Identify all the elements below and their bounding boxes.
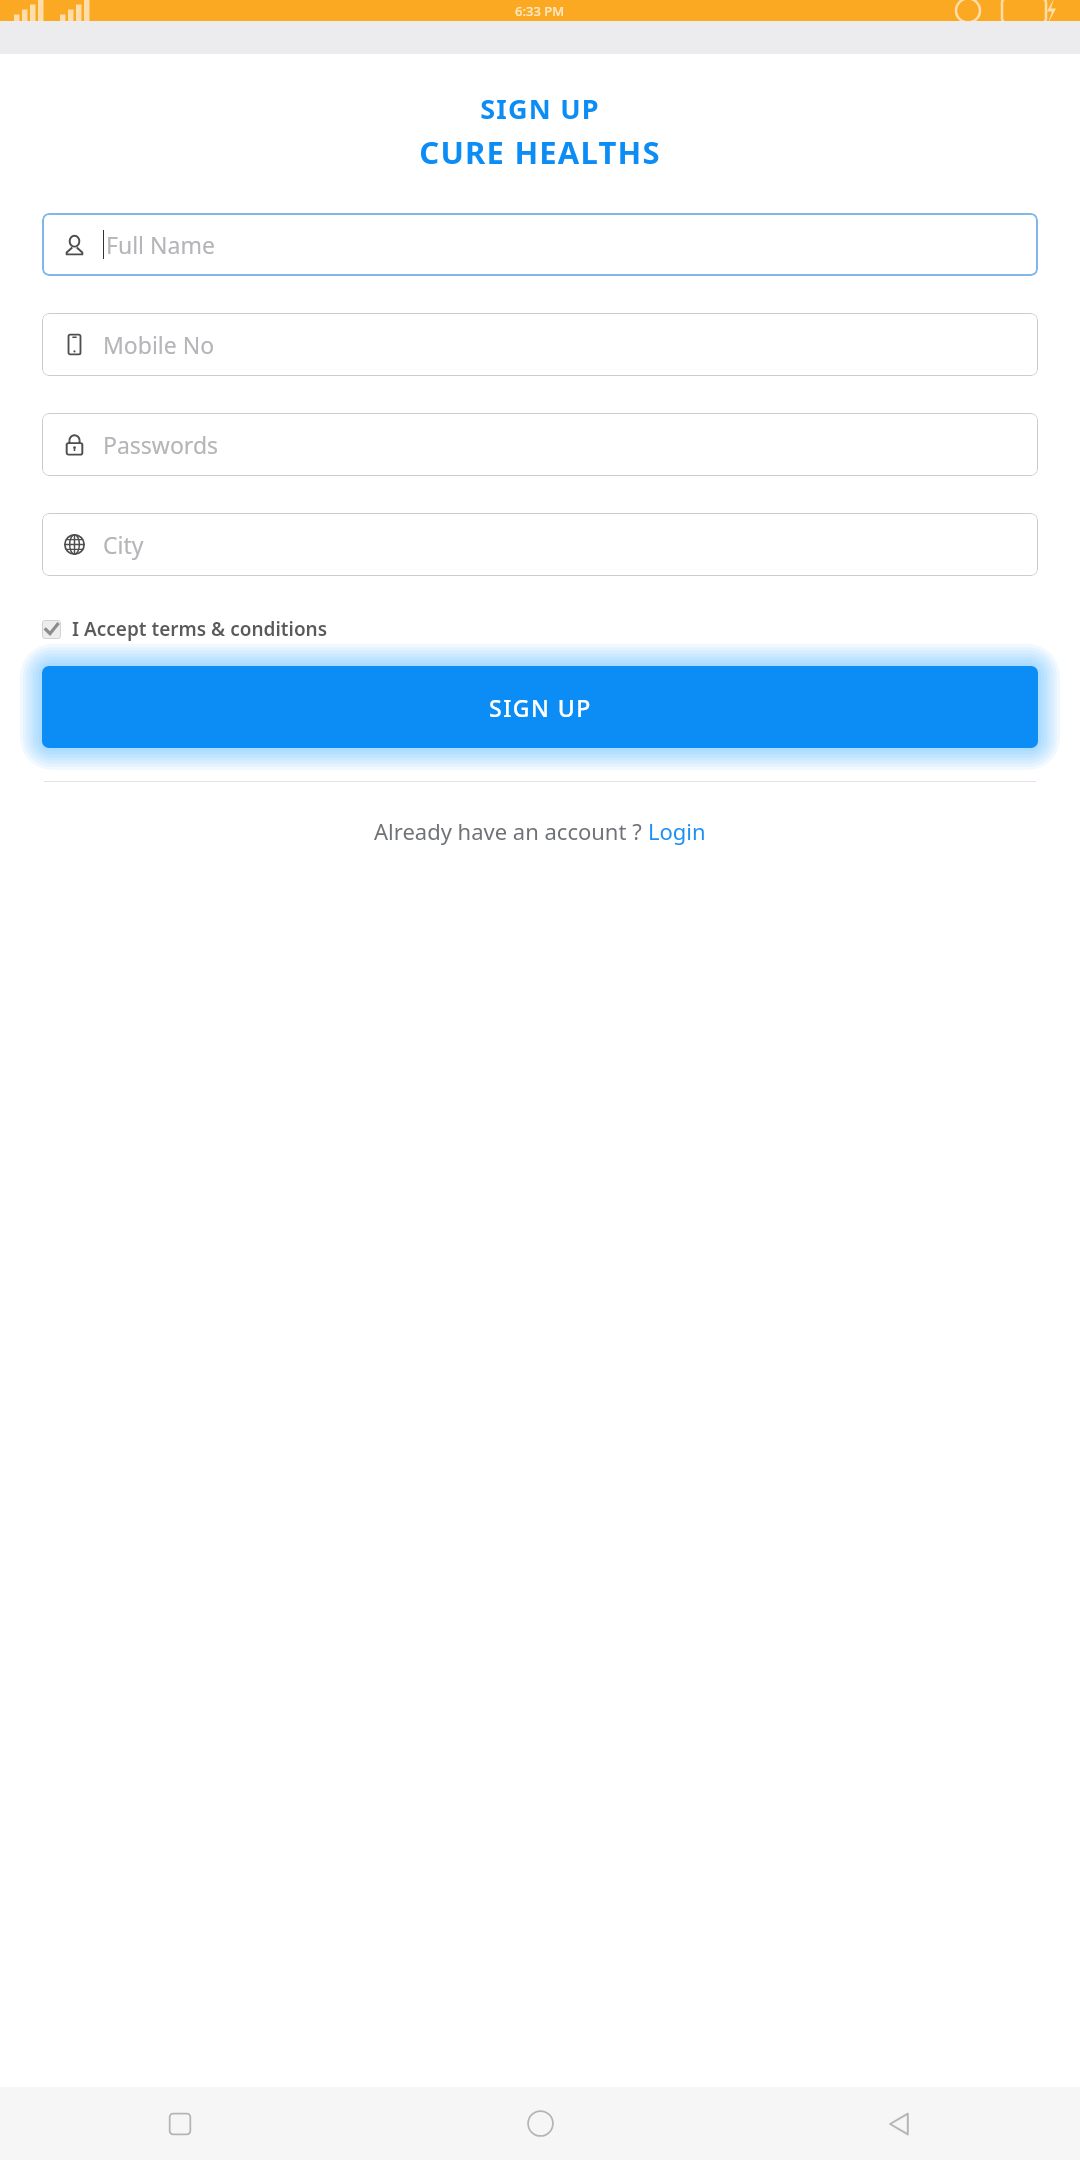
button[interactable]: I Accept terms & conditions — [42, 614, 328, 644]
staticText: Full Name — [106, 229, 215, 260]
staticText: I Accept terms & conditions — [72, 616, 328, 642]
staticText: Login — [648, 816, 706, 846]
staticText: SIGN UP — [0, 90, 1080, 127]
staticText: Passwords — [103, 429, 219, 460]
button[interactable]: Full Name — [42, 213, 1038, 276]
button[interactable]: SIGN UP — [42, 666, 1038, 748]
button[interactable]: Home — [360, 2087, 720, 2160]
staticText: Already have an account ? — [374, 816, 648, 846]
staticText: Mobile No — [103, 329, 215, 360]
staticText: SIGN UP — [489, 692, 592, 723]
staticText: City — [103, 529, 144, 560]
button[interactable]: Mobile No — [42, 313, 1038, 376]
button[interactable]: Recents — [0, 2087, 360, 2160]
button[interactable]: Login — [648, 816, 706, 846]
button[interactable]: City — [42, 513, 1038, 576]
staticText: 6:33 PM — [515, 2, 565, 20]
button[interactable]: Back — [720, 2087, 1080, 2160]
button[interactable]: Passwords — [42, 413, 1038, 476]
staticText: CURE HEALTHS — [0, 131, 1080, 173]
